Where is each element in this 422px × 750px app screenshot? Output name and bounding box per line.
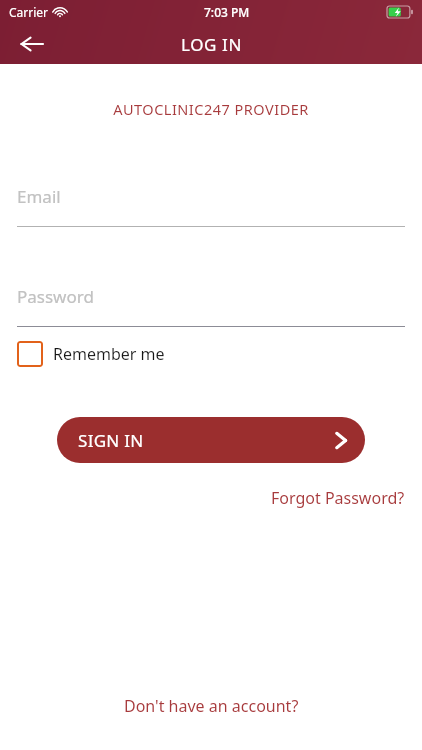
button[interactable]: Back [12, 24, 52, 64]
staticText: Forgot Password? [271, 487, 405, 509]
button[interactable]: Forgot Password? [271, 487, 405, 509]
staticText: Remember me [53, 343, 165, 365]
button[interactable]: SIGN IN [57, 417, 365, 463]
staticText: Carrier [9, 4, 49, 20]
button[interactable]: Remember me [17, 337, 165, 371]
staticText: SIGN IN [78, 429, 144, 452]
button[interactable]: Don't have an account? [124, 695, 299, 717]
staticText: 7:03 PM [204, 4, 250, 20]
staticText: AUTOCLINIC247 PROVIDER [113, 99, 309, 119]
staticText: Password [17, 285, 94, 308]
staticText: LOG IN [181, 33, 242, 56]
button[interactable]: Password [17, 285, 405, 327]
button[interactable]: Email [17, 185, 405, 227]
staticText: Email [17, 185, 61, 208]
staticText: Don't have an account? [124, 695, 299, 717]
